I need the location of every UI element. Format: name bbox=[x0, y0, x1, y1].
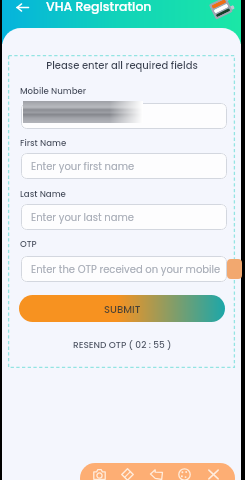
staticText: VHA Registration bbox=[46, 0, 152, 15]
button[interactable]: SUBMIT bbox=[19, 295, 225, 322]
button[interactable]: RESEND OTP ( 02 : 55 ) bbox=[19, 337, 225, 353]
staticText: Enter the OTP received on your mobile bbox=[31, 262, 221, 276]
staticText: OTP bbox=[20, 238, 37, 250]
button[interactable]: Erase bbox=[115, 463, 139, 480]
staticText: Enter your first name bbox=[31, 159, 135, 173]
button[interactable]: Enter the OTP received on your mobile bbox=[21, 256, 227, 282]
staticText: Last Name bbox=[20, 188, 66, 200]
button[interactable] bbox=[21, 103, 227, 129]
button[interactable]: Colour bbox=[172, 463, 196, 480]
staticText: RESEND OTP ( 02 : 55 ) bbox=[73, 339, 172, 352]
button[interactable]: Enter your first name bbox=[21, 153, 227, 179]
staticText: SUBMIT bbox=[104, 302, 141, 316]
button[interactable]: Election Commission of India logo bbox=[207, 0, 237, 21]
button[interactable]: Back bbox=[9, 0, 35, 21]
staticText: First Name bbox=[20, 137, 67, 149]
button[interactable]: Undo bbox=[144, 463, 168, 480]
button[interactable]: Close bbox=[201, 463, 225, 480]
staticText: Enter your last name bbox=[31, 210, 135, 224]
button[interactable]: Enter your last name bbox=[21, 204, 227, 230]
button[interactable]: Resize selection bbox=[227, 259, 242, 279]
button[interactable]: Screenshot bbox=[87, 463, 111, 480]
staticText: Mobile Number bbox=[20, 85, 87, 97]
staticText: Please enter all required fields bbox=[19, 58, 225, 72]
